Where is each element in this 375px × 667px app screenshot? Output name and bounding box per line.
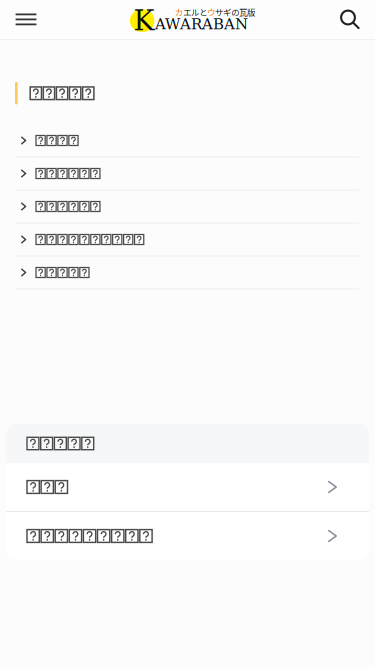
staticText: サギの瓦版 [215,6,255,18]
button[interactable] [6,463,369,511]
button[interactable] [0,157,375,190]
button[interactable] [0,124,375,157]
staticText: ウ [207,6,215,18]
button[interactable]: Search [332,0,368,38]
staticText: K [133,4,154,37]
staticText: エルと [183,6,207,18]
button[interactable] [0,190,375,223]
button[interactable] [0,223,375,256]
button[interactable] [0,256,375,289]
staticText: カ [175,6,183,18]
button[interactable]: Menu [8,0,44,38]
staticText: AWARABAN [155,15,248,33]
button[interactable] [6,512,369,560]
